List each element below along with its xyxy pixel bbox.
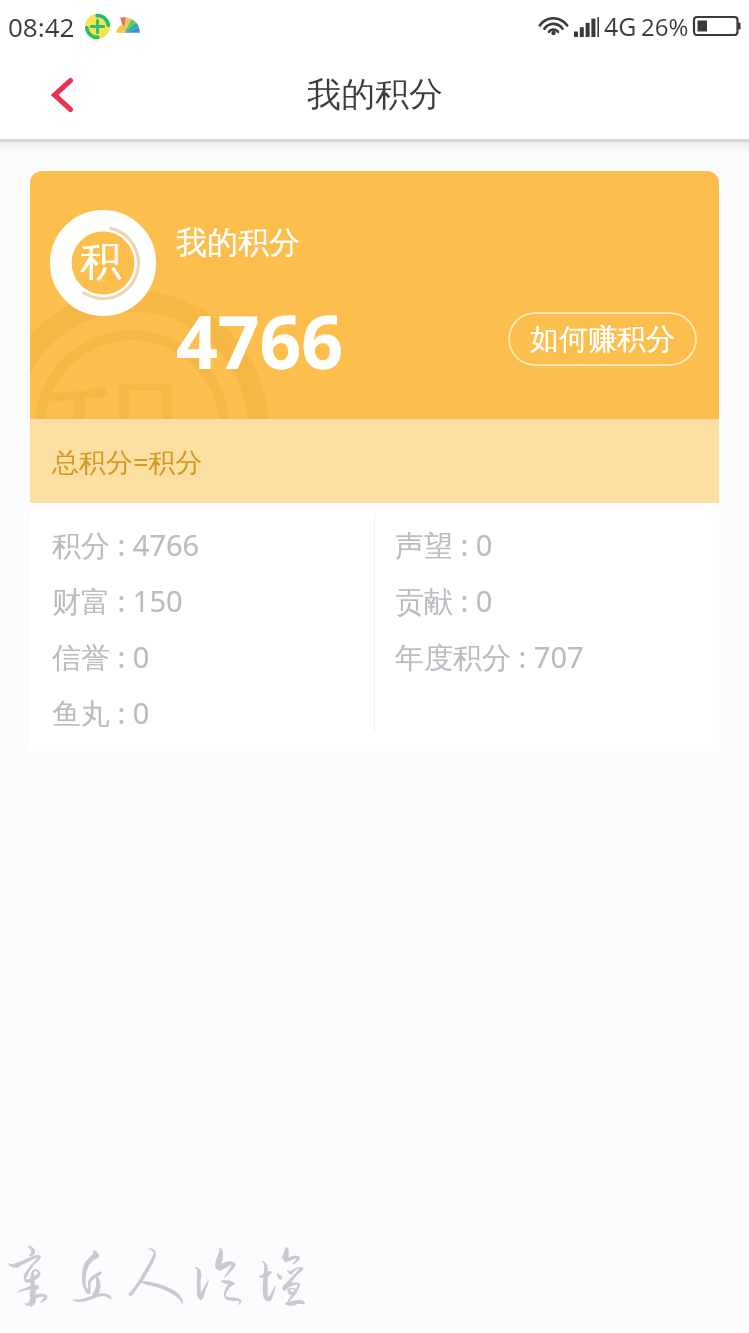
- staticText: 如何赚积分: [530, 321, 675, 358]
- staticText: 财富 : 150: [52, 581, 183, 621]
- staticText: 4G: [604, 9, 637, 43]
- staticText: 信誉 : 0: [52, 637, 150, 677]
- staticText: 积: [80, 236, 121, 288]
- button[interactable]: 信誉 : 0: [52, 629, 374, 685]
- staticText: 我的积分: [176, 223, 300, 262]
- button[interactable]: 年度积分 : 707: [395, 629, 719, 685]
- staticText: 鱼丸 : 0: [52, 693, 150, 733]
- button[interactable]: 积分 : 4766: [52, 517, 374, 573]
- staticText: 声望 : 0: [395, 525, 493, 565]
- staticText: 积分 : 4766: [52, 525, 200, 565]
- button[interactable]: 如何赚积分: [508, 312, 697, 366]
- staticText: 08:42: [8, 9, 75, 44]
- staticText: 我的积分: [307, 73, 443, 116]
- staticText: 26%: [641, 10, 689, 43]
- staticText: 章丘人论坛: [0, 1242, 314, 1304]
- button[interactable]: 声望 : 0: [395, 517, 719, 573]
- staticText: 总积分=积分: [52, 443, 203, 480]
- button[interactable]: 财富 : 150: [52, 573, 374, 629]
- button[interactable]: 鱼丸 : 0: [52, 685, 374, 741]
- staticText: 贡献 : 0: [395, 581, 493, 621]
- button[interactable]: 总积分=积分: [30, 419, 719, 503]
- staticText: 4766: [176, 291, 344, 390]
- button[interactable]: Back: [31, 64, 93, 126]
- staticText: 积: [40, 353, 185, 419]
- button[interactable]: 贡献 : 0: [395, 573, 719, 629]
- staticText: 年度积分 : 707: [395, 637, 584, 677]
